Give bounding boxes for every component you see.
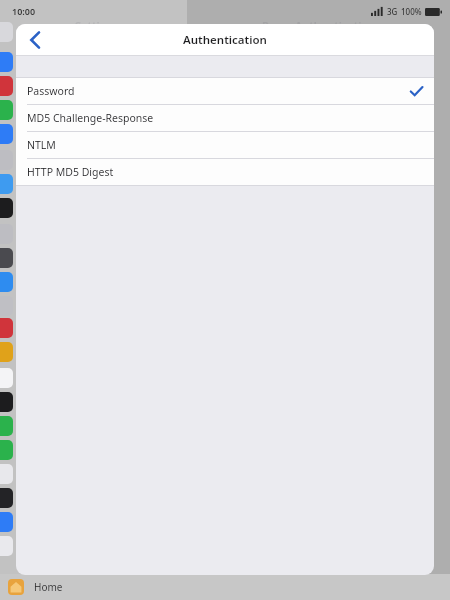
button[interactable]: HTTP MD5 Digest [16, 159, 434, 185]
staticText: 10:00 [12, 5, 36, 17]
staticText: Proxy Authentication [262, 18, 376, 33]
staticText: MD5 Challenge-Response [27, 111, 154, 125]
staticText: Authentication [183, 32, 267, 48]
button[interactable]: NTLM [16, 132, 434, 158]
button[interactable]: Back [18, 25, 52, 55]
staticText: Home [34, 580, 63, 594]
staticText: Password [27, 84, 75, 98]
staticText: HTTP MD5 Digest [27, 165, 114, 179]
button[interactable]: Password [16, 78, 434, 104]
staticText: NTLM [27, 138, 56, 152]
button[interactable]: Home [8, 579, 63, 595]
staticText: Settings [75, 18, 119, 33]
staticText: 3G [387, 6, 398, 17]
staticText: 100% [401, 6, 422, 17]
button[interactable]: MD5 Challenge-Response [16, 105, 434, 131]
